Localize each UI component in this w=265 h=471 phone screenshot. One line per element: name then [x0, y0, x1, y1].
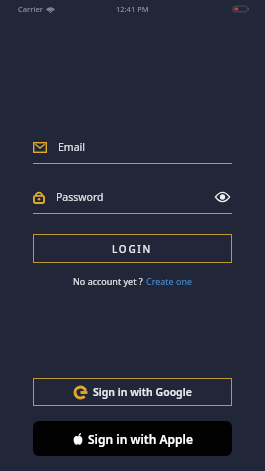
staticText: Sign in with Google [93, 385, 192, 399]
staticText: LOGIN [112, 242, 153, 256]
button[interactable]: LOGIN [33, 234, 232, 263]
staticText: Password [56, 190, 104, 204]
staticText: Carrier [18, 4, 43, 14]
staticText: Sign in with Apple [88, 431, 193, 447]
staticText: 12:41 PM [116, 4, 149, 14]
button[interactable]: Sign in with Google [33, 378, 232, 406]
staticText: No account yet ? [73, 275, 143, 287]
button[interactable]: Sign in with Apple [33, 421, 232, 456]
button[interactable]: Create one [146, 275, 193, 287]
button[interactable]: Show password [212, 187, 232, 207]
staticText: Email [58, 140, 85, 154]
staticText: Create one [146, 275, 193, 287]
